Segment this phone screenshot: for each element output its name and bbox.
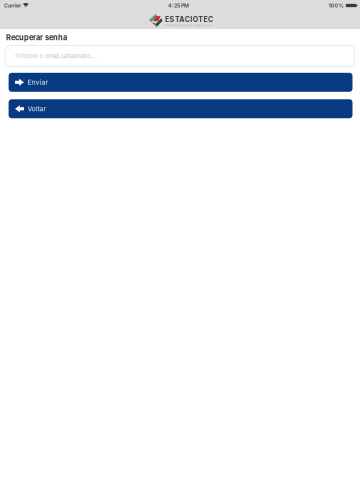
button[interactable]: Enviar xyxy=(9,73,352,92)
staticText: Informe o email cadastrado... xyxy=(15,52,97,60)
staticText: Recuperar senha xyxy=(6,33,67,42)
button[interactable]: Voltar xyxy=(9,99,352,118)
staticText: Voltar xyxy=(27,105,46,113)
staticText: 100% xyxy=(328,2,343,9)
staticText: 4:25 PM xyxy=(168,2,189,9)
staticText: Carrier xyxy=(4,2,21,9)
staticText: ESTACIOTEC xyxy=(165,15,213,24)
staticText: Enviar xyxy=(27,78,48,86)
staticText: unidade hospital santa luzia xyxy=(165,23,211,27)
